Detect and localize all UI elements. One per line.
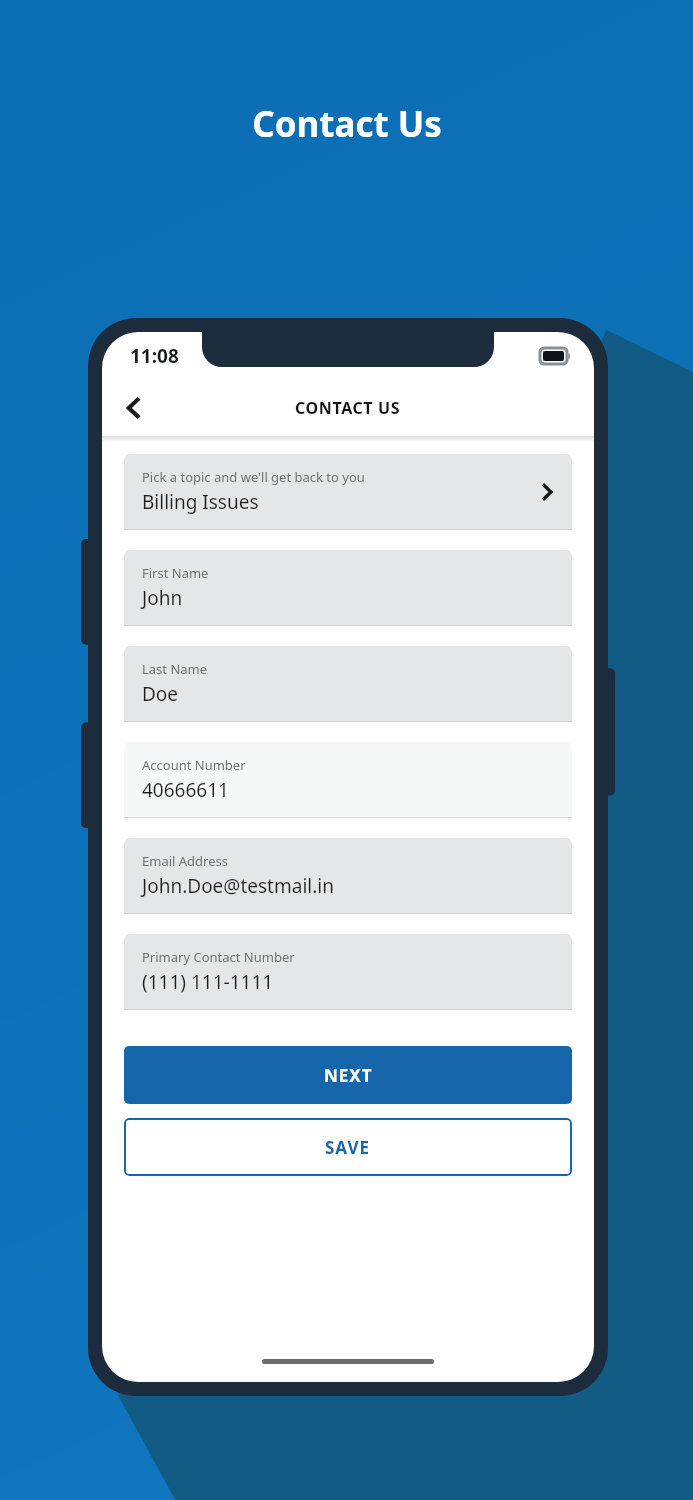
staticText: CONTACT US	[295, 397, 401, 419]
button[interactable]: SAVE	[124, 1118, 572, 1176]
button[interactable]: Email Address	[124, 838, 572, 914]
staticText: Contact Us	[252, 100, 442, 148]
staticText: John	[142, 585, 183, 611]
staticText: Pick a topic and we'll get back to you	[142, 468, 365, 486]
staticText: 11:08	[130, 343, 179, 369]
staticText: Primary Contact Number	[142, 948, 295, 966]
staticText: Doe	[142, 681, 179, 707]
button[interactable]: First Name	[124, 550, 572, 626]
staticText: First Name	[142, 564, 209, 582]
button[interactable]: Account Number	[124, 742, 572, 818]
staticText: 40666611	[142, 777, 229, 803]
button[interactable]: Primary Contact Number	[124, 934, 572, 1010]
staticText: John.Doe@testmail.in	[142, 873, 334, 899]
button[interactable]: NEXT	[124, 1046, 572, 1104]
staticText: Email Address	[142, 852, 228, 870]
button[interactable]: Back	[112, 386, 156, 430]
button[interactable]: Pick a topic and we'll get back to you	[124, 454, 572, 530]
staticText: SAVE	[325, 1136, 371, 1159]
button[interactable]: Last Name	[124, 646, 572, 722]
staticText: Account Number	[142, 756, 246, 774]
staticText: Last Name	[142, 660, 208, 678]
staticText: Billing Issues	[142, 489, 259, 515]
staticText: NEXT	[324, 1064, 373, 1087]
staticText: (111) 111-1111	[142, 969, 274, 995]
